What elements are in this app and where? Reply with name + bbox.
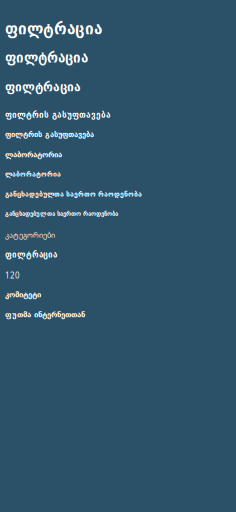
staticText: ფუთმა ინტერნეთთან <box>5 310 85 319</box>
staticText: ფილტრის გასუფთავება <box>5 110 111 120</box>
staticText: ლაბორატორია <box>5 150 62 159</box>
staticText: ფილტრაცია <box>5 250 57 259</box>
staticText: 120 <box>5 270 20 281</box>
staticText: ფილტრის გასუფთავება <box>5 130 94 139</box>
staticText: ფილტრაცია <box>5 20 102 38</box>
staticText: ფილტრაცია <box>5 80 81 94</box>
staticText: განცხადებულთა საერთო რაოდენობა <box>5 210 118 217</box>
staticText: კომიტეტი <box>5 290 41 299</box>
staticText: ლაბორატორია <box>5 170 61 178</box>
staticText: ფილტრაცია <box>5 50 88 65</box>
staticText: განცხადებულთა საერთო რაოდენობა <box>5 190 142 198</box>
staticText: კატეგორიები <box>5 230 55 240</box>
